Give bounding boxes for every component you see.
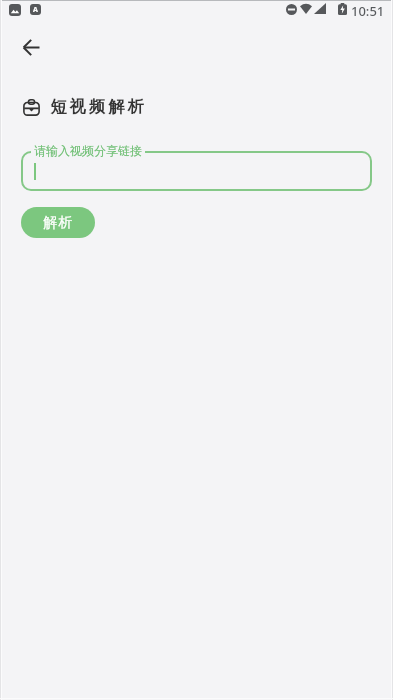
- staticText: 请输入视频分享链接: [34, 143, 142, 158]
- staticText: 解析: [43, 214, 73, 232]
- staticText: 10:51: [351, 2, 385, 20]
- staticText: 短视频解析: [49, 97, 145, 117]
- staticText: A: [33, 5, 38, 15]
- button[interactable]: 请输入视频分享链接: [21, 151, 372, 191]
- button[interactable]: 解析: [21, 207, 95, 238]
- button[interactable]: [15, 31, 47, 63]
